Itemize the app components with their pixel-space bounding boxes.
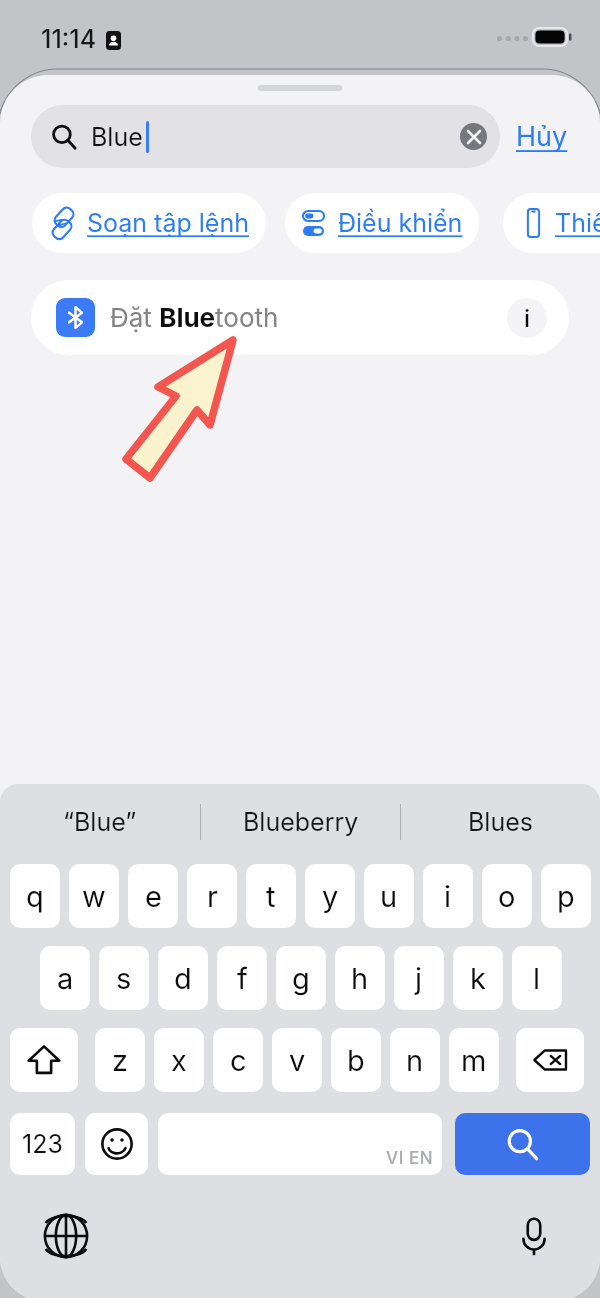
- button[interactable]: n: [390, 1028, 440, 1092]
- staticText: q: [26, 879, 44, 914]
- staticText: h: [351, 961, 369, 996]
- button[interactable]: Search: [455, 1113, 590, 1175]
- button[interactable]: Clear text: [460, 123, 487, 150]
- button[interactable]: y: [305, 864, 355, 928]
- button[interactable]: Đặt Bluetooth: [31, 280, 569, 355]
- staticText: f: [237, 961, 248, 996]
- button[interactable]: Soạn tập lệnh: [32, 193, 266, 253]
- staticText: p: [557, 879, 575, 914]
- button[interactable]: Blue: [31, 105, 500, 168]
- button[interactable]: v: [272, 1028, 322, 1092]
- button[interactable]: t: [246, 864, 296, 928]
- staticText: i: [524, 304, 531, 333]
- staticText: Blueberry: [243, 807, 359, 837]
- button[interactable]: i: [423, 864, 473, 928]
- button[interactable]: m: [449, 1028, 499, 1092]
- staticText: 123: [22, 1129, 63, 1159]
- button[interactable]: More info: [507, 298, 547, 338]
- button[interactable]: Điều khiển: [285, 193, 479, 253]
- button[interactable]: d: [158, 946, 208, 1010]
- staticText: w: [82, 879, 106, 914]
- staticText: 11:14: [41, 24, 97, 54]
- staticText: n: [406, 1043, 424, 1078]
- button[interactable]: r: [187, 864, 237, 928]
- staticText: b: [347, 1043, 365, 1078]
- button[interactable]: “Blue”: [0, 796, 200, 848]
- button[interactable]: Space: [158, 1113, 442, 1175]
- button[interactable]: s: [99, 946, 149, 1010]
- button[interactable]: k: [453, 946, 503, 1010]
- staticText: Soạn tập lệnh: [87, 208, 249, 238]
- staticText: v: [289, 1043, 306, 1078]
- button[interactable]: Blues: [401, 796, 600, 848]
- staticText: j: [415, 961, 423, 996]
- staticText: Blues: [468, 807, 533, 837]
- button[interactable]: 123: [10, 1113, 75, 1175]
- staticText: o: [498, 879, 516, 914]
- button[interactable]: Emoji keyboard: [85, 1113, 148, 1175]
- button[interactable]: c: [213, 1028, 263, 1092]
- staticText: r: [207, 879, 218, 914]
- staticText: u: [380, 879, 398, 914]
- staticText: m: [461, 1043, 487, 1078]
- staticText: Đặt Bluetooth: [110, 302, 279, 333]
- staticText: z: [112, 1043, 129, 1078]
- staticText: Hủy: [516, 120, 568, 153]
- button[interactable]: g: [276, 946, 326, 1010]
- button[interactable]: x: [154, 1028, 204, 1092]
- button[interactable]: Blueberry: [201, 796, 400, 848]
- button[interactable]: Change keyboard language: [42, 1212, 90, 1260]
- staticText: y: [322, 879, 339, 914]
- button[interactable]: Dictation: [510, 1212, 558, 1260]
- button[interactable]: Shift: [10, 1028, 78, 1092]
- button[interactable]: z: [95, 1028, 145, 1092]
- staticText: k: [470, 961, 486, 996]
- button[interactable]: l: [512, 946, 562, 1010]
- staticText: x: [171, 1043, 187, 1078]
- button[interactable]: Thiết bị: [503, 193, 600, 253]
- button[interactable]: b: [331, 1028, 381, 1092]
- staticText: Điều khiển: [338, 208, 463, 238]
- button[interactable]: w: [69, 864, 119, 928]
- button[interactable]: Backspace: [516, 1028, 584, 1092]
- staticText: i: [444, 879, 452, 914]
- staticText: Thiết bị: [555, 208, 600, 238]
- staticText: Blue: [91, 122, 143, 152]
- button[interactable]: f: [217, 946, 267, 1010]
- button[interactable]: Hủy: [516, 120, 568, 153]
- button[interactable]: p: [541, 864, 591, 928]
- button[interactable]: o: [482, 864, 532, 928]
- button[interactable]: a: [40, 946, 90, 1010]
- button[interactable]: u: [364, 864, 414, 928]
- staticText: VI EN: [386, 1148, 434, 1169]
- button[interactable]: q: [10, 864, 60, 928]
- staticText: e: [145, 879, 162, 914]
- button[interactable]: h: [335, 946, 385, 1010]
- button[interactable]: e: [128, 864, 178, 928]
- staticText: l: [533, 961, 541, 996]
- button[interactable]: j: [394, 946, 444, 1010]
- staticText: c: [230, 1043, 247, 1078]
- staticText: s: [116, 961, 132, 996]
- staticText: g: [292, 961, 310, 996]
- staticText: a: [57, 961, 74, 996]
- staticText: d: [174, 961, 192, 996]
- staticText: “Blue”: [63, 807, 137, 837]
- staticText: t: [266, 879, 276, 914]
